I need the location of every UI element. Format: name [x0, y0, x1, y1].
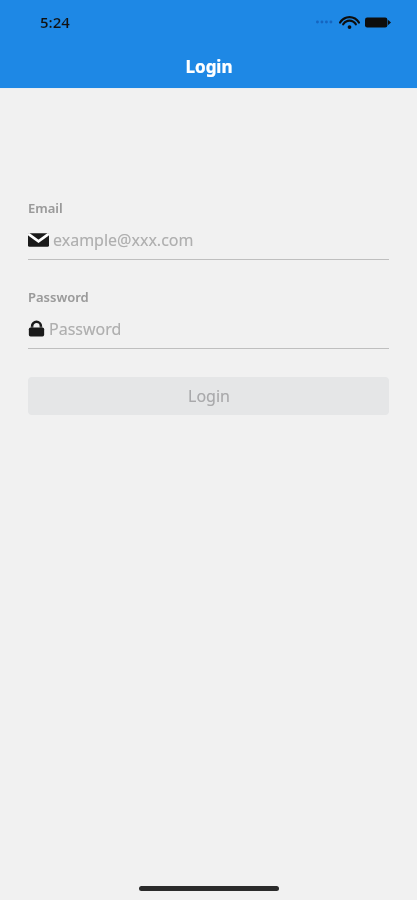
other: Password	[28, 320, 45, 338]
staticText: Password	[49, 318, 122, 340]
staticText: Email	[28, 199, 63, 217]
staticText: Password	[28, 288, 89, 306]
staticText: 5:24	[40, 12, 70, 32]
staticText: example@xxx.com	[53, 229, 194, 251]
button[interactable]: Login	[28, 377, 389, 415]
button[interactable]: Email	[28, 229, 389, 251]
other: Email	[28, 232, 49, 248]
button[interactable]: Password	[28, 318, 389, 340]
staticText: Login	[185, 55, 233, 78]
staticText: Login	[188, 385, 230, 407]
